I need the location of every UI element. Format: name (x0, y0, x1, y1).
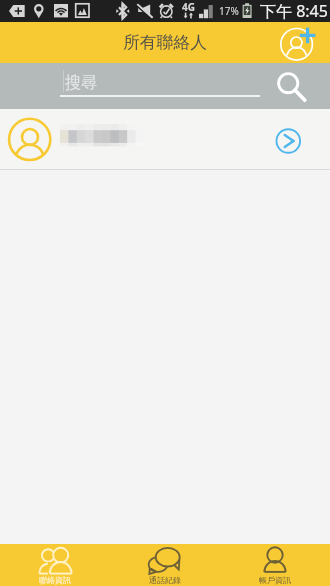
staticText: 通話紀錄 (149, 575, 181, 585)
button[interactable]: 帳戶資訊 (220, 544, 330, 586)
button[interactable]: Search (274, 70, 308, 104)
staticText: 所有聯絡人 (123, 32, 207, 53)
button[interactable]: Contact details (272, 125, 304, 157)
staticText: 搜尋 (65, 73, 97, 93)
button[interactable]: 通話紀錄 (110, 544, 220, 586)
staticText: 17% (219, 4, 239, 18)
button[interactable]: Contact details (0, 109, 330, 169)
staticText: 聯絡資訊 (39, 575, 71, 585)
staticText: 帳戶資訊 (259, 575, 291, 585)
button[interactable]: Add contact (277, 23, 317, 63)
staticText: 下午 8:45 (260, 0, 328, 22)
button[interactable]: 聯絡資訊 (0, 544, 110, 586)
staticText: 4G (182, 0, 195, 14)
